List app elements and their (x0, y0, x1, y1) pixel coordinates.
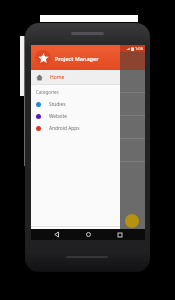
staticText: Home (50, 74, 65, 81)
staticText: O (38, 78, 42, 85)
staticText: Manage Categories (49, 230, 93, 237)
button[interactable]: O (31, 70, 145, 92)
staticText: 1:06 (135, 46, 143, 51)
button[interactable]: Studies (31, 98, 120, 110)
staticText: Categories (36, 89, 59, 95)
button[interactable]: Android Apps (31, 122, 120, 134)
button[interactable]: O (31, 93, 145, 115)
button[interactable]: Home (31, 70, 120, 84)
button[interactable]: Home (83, 229, 94, 240)
button[interactable]: O (31, 139, 145, 161)
staticText: Studies (49, 101, 66, 108)
button[interactable]: Recent apps (114, 229, 125, 240)
button[interactable]: Back (51, 229, 62, 240)
staticText: O (38, 101, 42, 108)
button[interactable]: Website (31, 110, 120, 122)
button[interactable]: Manage Categories (31, 227, 120, 240)
button[interactable]: O (31, 116, 145, 138)
staticText: Website (49, 113, 67, 120)
staticText: O (38, 124, 42, 131)
staticText: Android Apps (49, 125, 80, 132)
button[interactable]: Add project (125, 214, 139, 228)
staticText: Project Manager (55, 55, 99, 62)
